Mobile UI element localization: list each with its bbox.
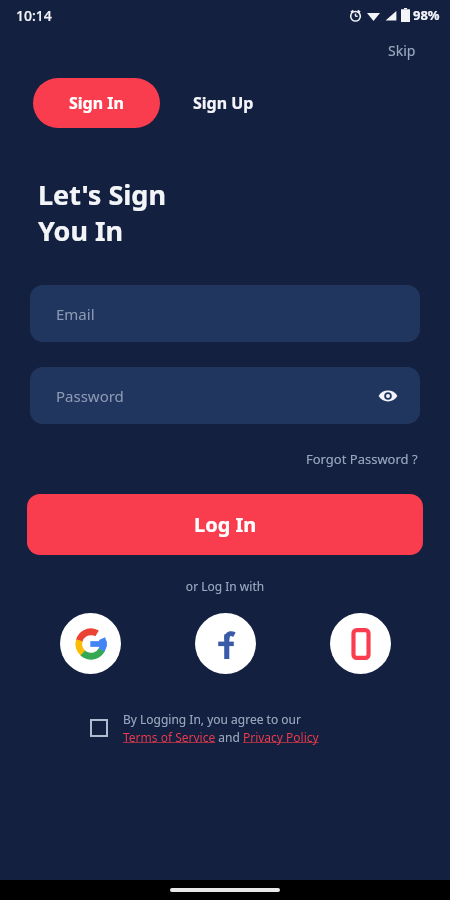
staticText: Skip (388, 41, 416, 60)
button[interactable]: Forgot Password ? (302, 446, 422, 472)
staticText: Sign Up (193, 92, 254, 114)
button[interactable]: Email (30, 285, 420, 342)
button[interactable]: Log In (27, 494, 423, 555)
staticText: By Logging In, you agree to our (123, 711, 301, 727)
button[interactable]: Skip (384, 37, 420, 64)
button[interactable]: Show password (372, 380, 404, 412)
button[interactable]: Terms of Service and Privacy Policy (123, 729, 319, 745)
staticText: Email (56, 304, 95, 324)
button[interactable]: Password (30, 367, 420, 424)
button[interactable]: Sign Up (160, 78, 287, 128)
staticText: 98% (413, 6, 440, 24)
button[interactable]: Sign in with phone number (330, 613, 391, 674)
button[interactable]: Sign In (33, 78, 160, 128)
staticText: 10:14 (16, 6, 52, 25)
staticText: Sign In (69, 92, 124, 114)
button[interactable]: Accept terms checkbox (88, 717, 110, 739)
button[interactable]: Sign in with Facebook (195, 613, 256, 674)
staticText: or Log In with (0, 578, 450, 594)
staticText: Password (56, 386, 124, 406)
staticText: Forgot Password ? (306, 450, 418, 468)
button[interactable]: Sign in with Google (60, 613, 121, 674)
staticText: Let's Sign You In (38, 176, 166, 249)
staticText: Log In (194, 511, 257, 538)
